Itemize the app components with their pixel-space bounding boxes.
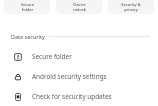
other: Android security settings — [14, 73, 22, 81]
button[interactable]: Security & privacy — [108, 0, 154, 14]
staticText: Secure folder — [21, 2, 34, 12]
staticText: Android security settings — [32, 72, 107, 81]
staticText: Check for security updates — [32, 92, 112, 101]
staticText: Secure folder — [32, 52, 72, 61]
button[interactable]: Check for security updates — [0, 86, 158, 106]
staticText: Security & privacy — [121, 2, 141, 12]
button[interactable]: Device unlock — [56, 0, 102, 14]
button[interactable]: Secure folder — [4, 0, 50, 14]
other: Check for security updates — [14, 93, 22, 101]
button[interactable]: Secure folder — [0, 46, 158, 66]
button[interactable]: Android security settings — [0, 66, 158, 86]
staticText: Data security — [11, 33, 45, 40]
staticText: Device unlock — [73, 2, 86, 12]
other: Secure folder — [14, 53, 22, 61]
